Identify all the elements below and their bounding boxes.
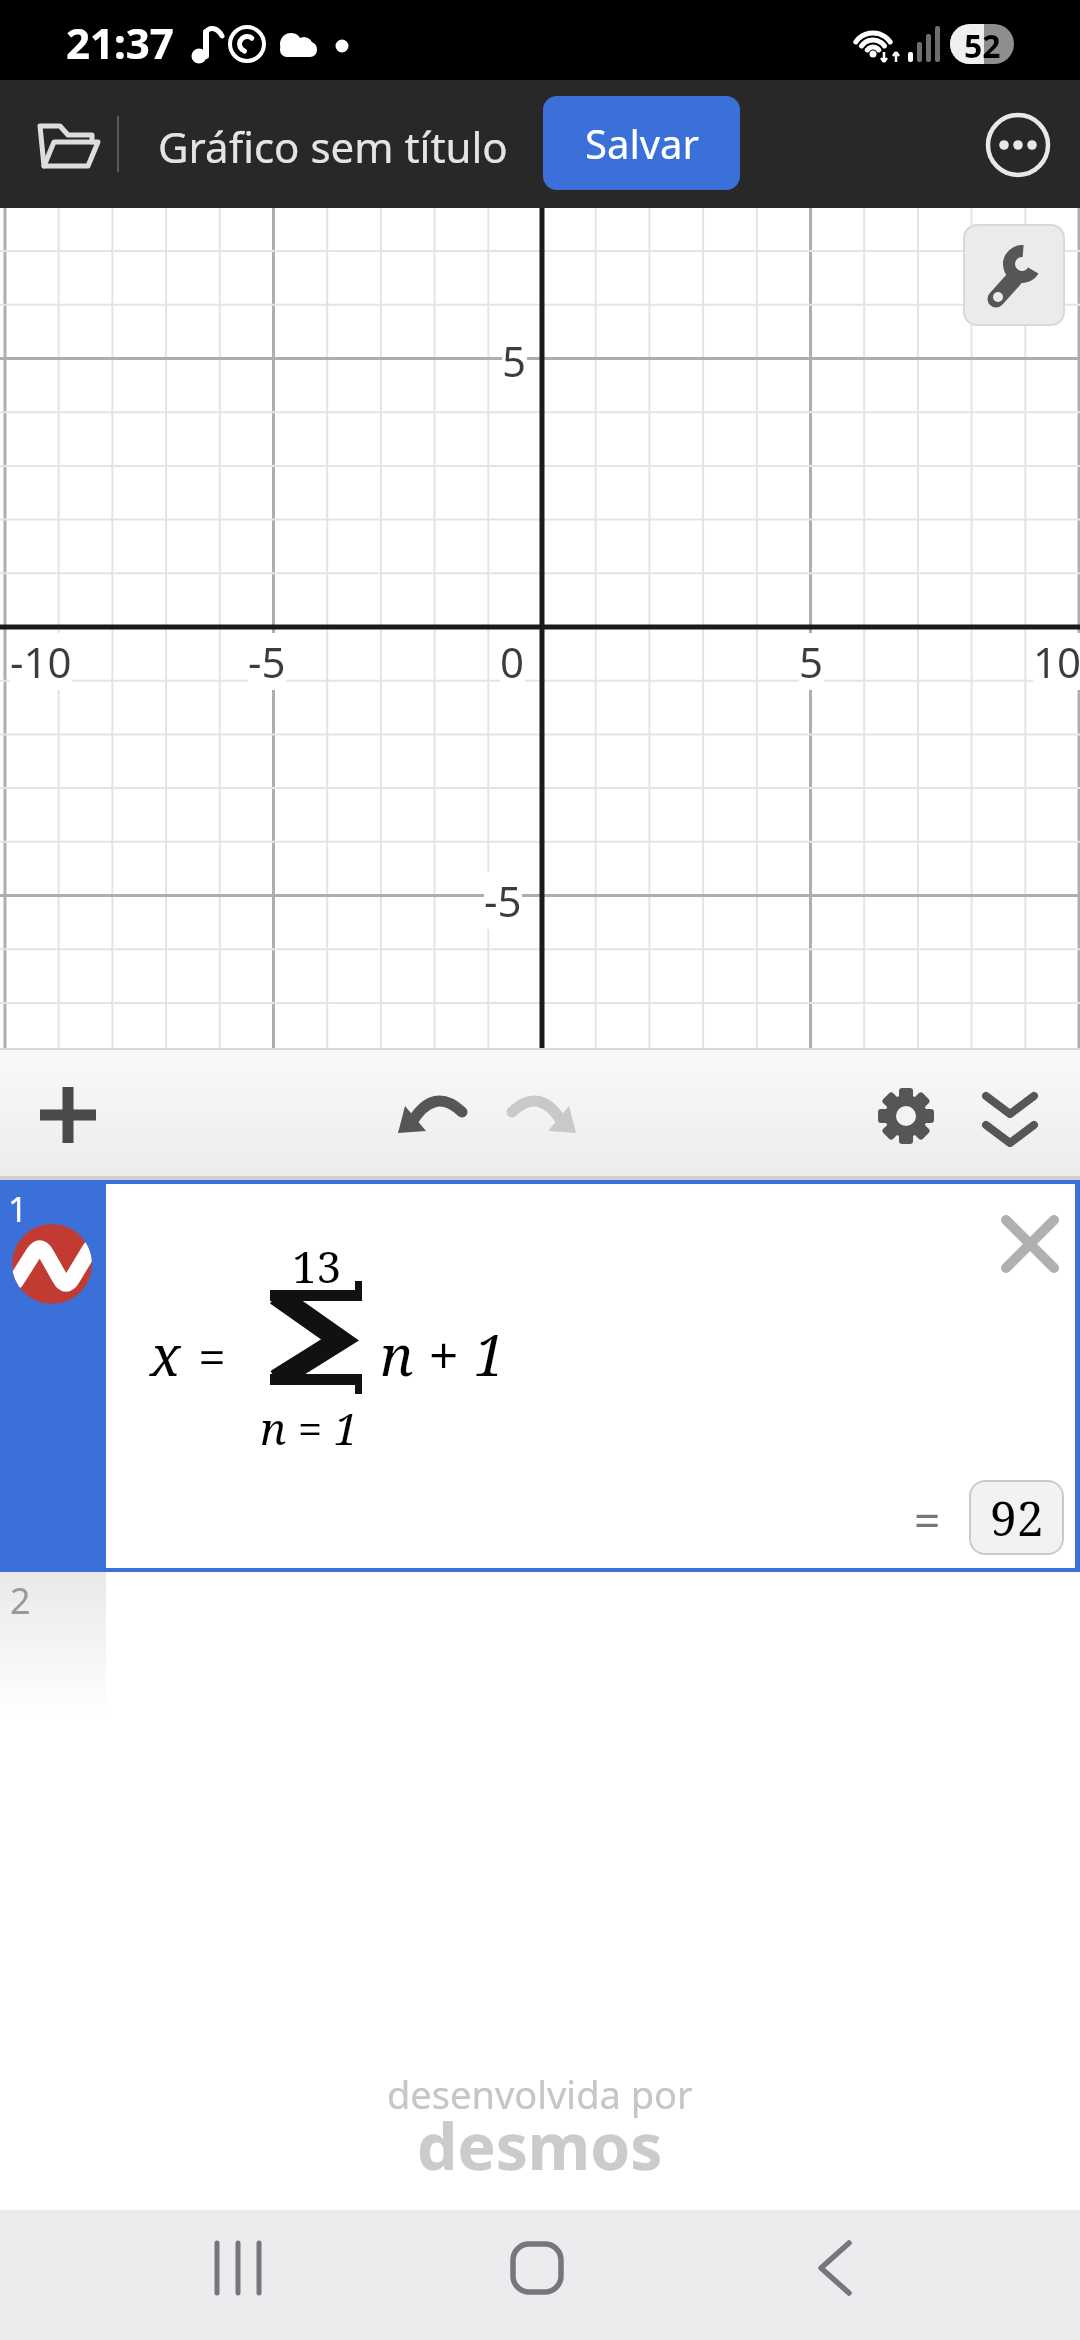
- button[interactable]: [984, 111, 1052, 179]
- button[interactable]: [24, 104, 108, 184]
- button[interactable]: 2: [0, 1572, 106, 1717]
- staticText: Gráfico sem título: [158, 118, 508, 175]
- button[interactable]: [392, 1078, 472, 1148]
- staticText: 92: [990, 1485, 1044, 1550]
- staticText: n + 1: [380, 1316, 506, 1392]
- staticText: 10: [1033, 633, 1080, 690]
- staticText: 21:37: [66, 14, 174, 71]
- button[interactable]: [487, 2213, 587, 2323]
- staticText: 13: [292, 1236, 342, 1296]
- button[interactable]: [963, 224, 1065, 326]
- staticText: -5: [248, 633, 286, 690]
- staticText: 1: [8, 1186, 28, 1232]
- staticText: -10: [10, 633, 72, 690]
- staticText: =: [198, 1322, 226, 1390]
- button[interactable]: [780, 2213, 880, 2323]
- button[interactable]: [502, 1078, 582, 1148]
- button[interactable]: [972, 1078, 1048, 1154]
- staticText: 5: [502, 332, 527, 389]
- staticText: 5: [799, 633, 824, 690]
- staticText: 0: [500, 633, 525, 690]
- staticText: -5: [484, 872, 522, 929]
- button[interactable]: [866, 1076, 946, 1156]
- staticText: 52: [964, 24, 1001, 64]
- staticText: 2: [10, 1576, 31, 1625]
- button[interactable]: [994, 1208, 1066, 1280]
- staticText: =: [914, 1488, 941, 1551]
- staticText: desenvolvida por: [387, 2068, 693, 2120]
- button[interactable]: [28, 1075, 108, 1155]
- button[interactable]: Salvar: [543, 96, 740, 190]
- staticText: x: [150, 1316, 181, 1392]
- staticText: n = 1: [260, 1398, 359, 1458]
- button[interactable]: [187, 2213, 287, 2323]
- staticText: desmos: [417, 2102, 663, 2182]
- button[interactable]: 1: [0, 1184, 1080, 1568]
- staticText: Salvar: [585, 116, 699, 170]
